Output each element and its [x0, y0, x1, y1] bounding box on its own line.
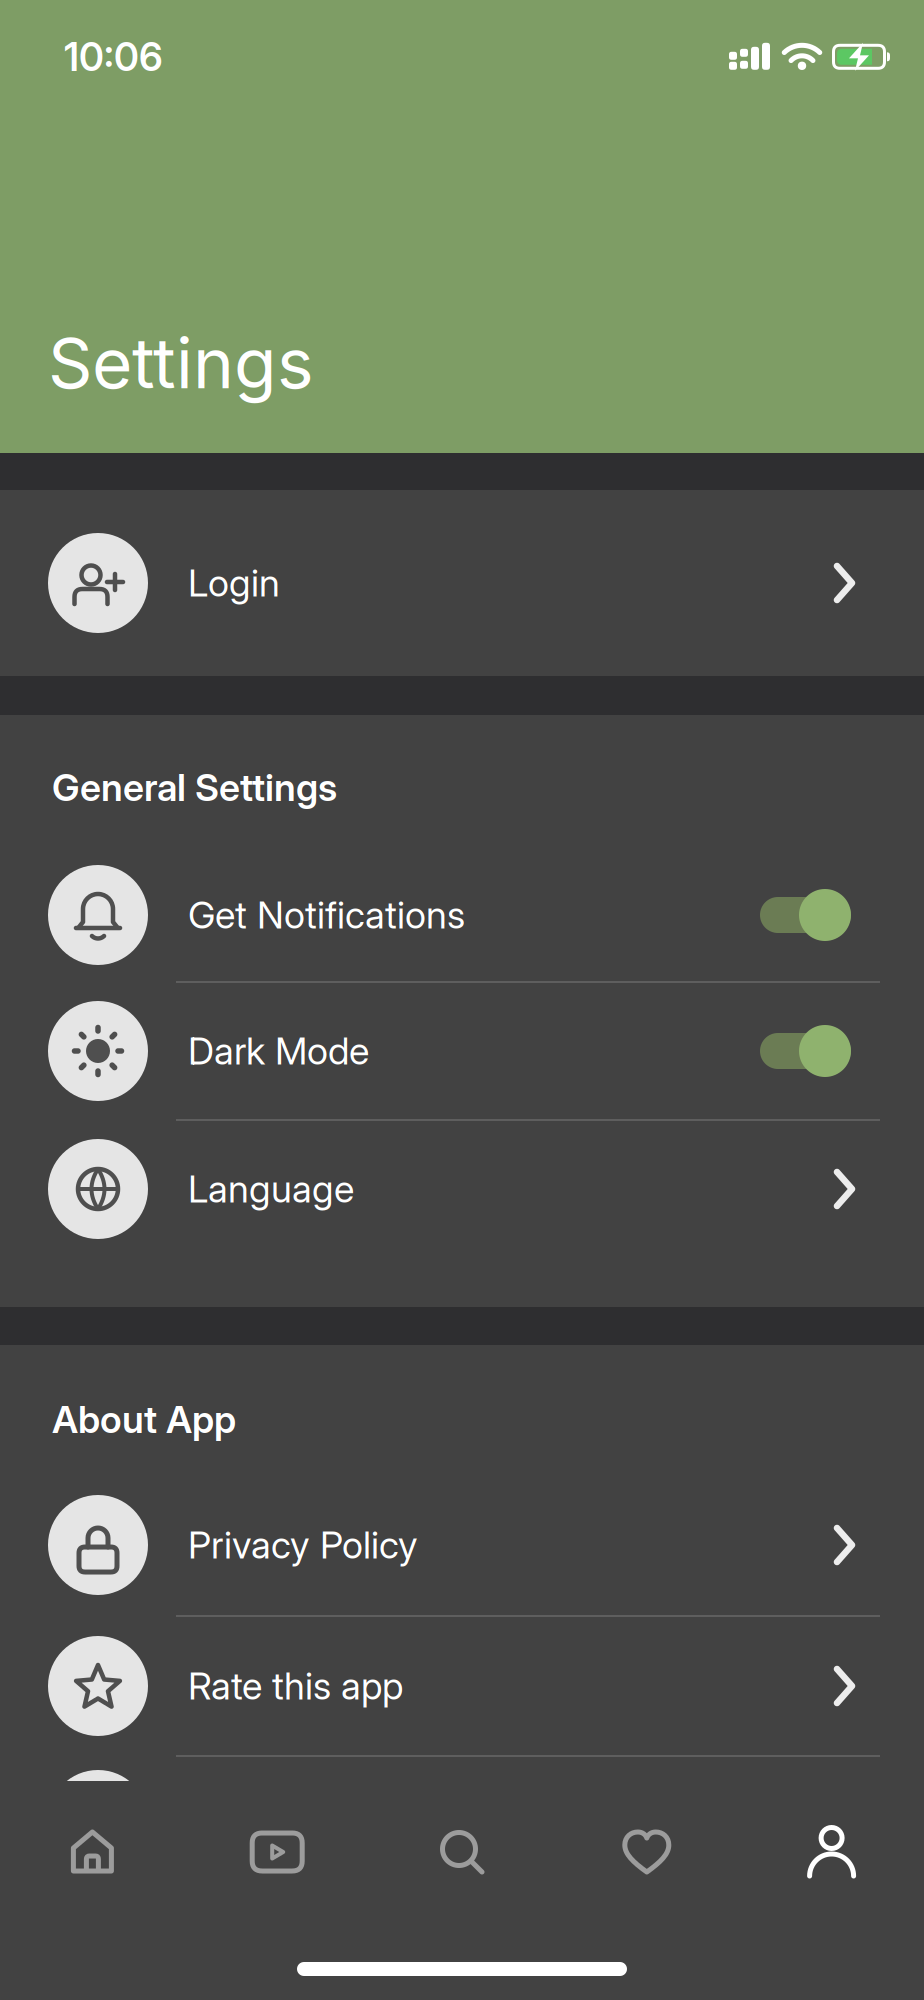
button[interactable]: Get Notifications: [760, 889, 851, 941]
staticText: General Settings: [52, 765, 337, 809]
button[interactable]: Profile: [739, 1824, 924, 1880]
button[interactable]: Login: [0, 490, 924, 676]
staticText: Language: [188, 1167, 354, 1211]
button[interactable]: Privacy Policy: [0, 1475, 924, 1615]
staticText: Get Notifications: [188, 893, 465, 937]
button[interactable]: Dark Mode: [760, 1025, 851, 1077]
staticText: About App: [52, 1397, 236, 1441]
staticText: Login: [188, 561, 280, 605]
button[interactable]: Favorites: [554, 1826, 739, 1878]
staticText: Dark Mode: [188, 1029, 369, 1073]
button[interactable]: Search: [370, 1826, 554, 1878]
staticText: 10:06: [64, 34, 163, 80]
button[interactable]: Home: [0, 1824, 185, 1880]
button[interactable]: Videos: [185, 1826, 370, 1878]
button[interactable]: Language: [0, 1121, 924, 1257]
staticText: Rate this app: [188, 1664, 403, 1708]
button[interactable]: Rate this app: [0, 1617, 924, 1755]
staticText: Privacy Policy: [188, 1523, 418, 1567]
staticText: Settings: [48, 322, 314, 404]
